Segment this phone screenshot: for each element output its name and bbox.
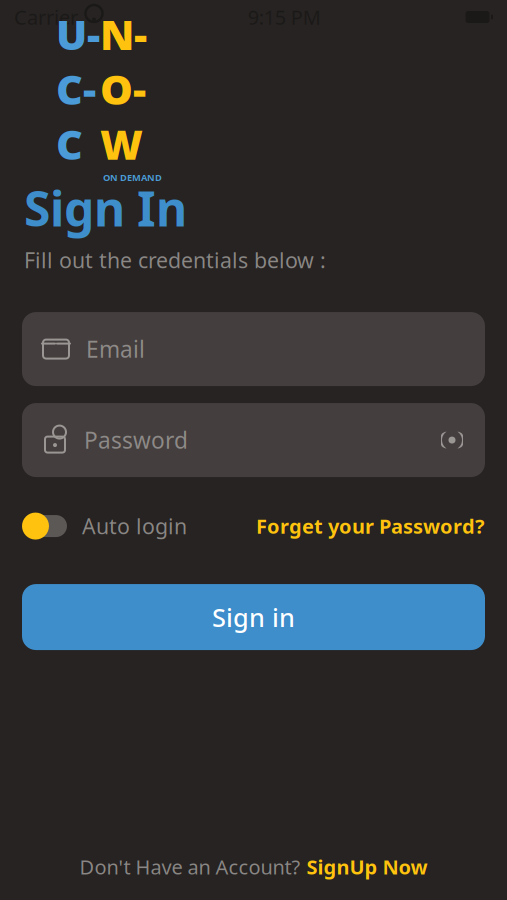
staticText: Email xyxy=(86,334,145,364)
staticText: UCC xyxy=(56,6,100,171)
staticText: Don't Have an Account? xyxy=(79,853,300,880)
staticText: Fill out the credentials below : xyxy=(24,246,326,274)
staticText: Password xyxy=(84,425,188,455)
staticText: Forget your Password? xyxy=(256,513,485,539)
staticText: Auto login xyxy=(82,512,187,540)
button[interactable]: Sign in xyxy=(22,584,485,650)
staticText: Carrier xyxy=(14,4,78,30)
staticText: NOW xyxy=(100,6,147,171)
button[interactable]: Forget your Password? xyxy=(256,513,485,539)
staticText: Sign In xyxy=(24,176,187,240)
staticText: ON DEMAND xyxy=(103,171,162,183)
button[interactable]: Don't Have an Account? xyxy=(79,853,427,880)
button[interactable]: Auto login xyxy=(22,512,187,540)
button[interactable]: Show password xyxy=(433,421,471,459)
staticText: SignUp Now xyxy=(306,853,427,880)
staticText: 9:15 PM xyxy=(248,4,321,30)
staticText: Sign in xyxy=(212,600,295,634)
